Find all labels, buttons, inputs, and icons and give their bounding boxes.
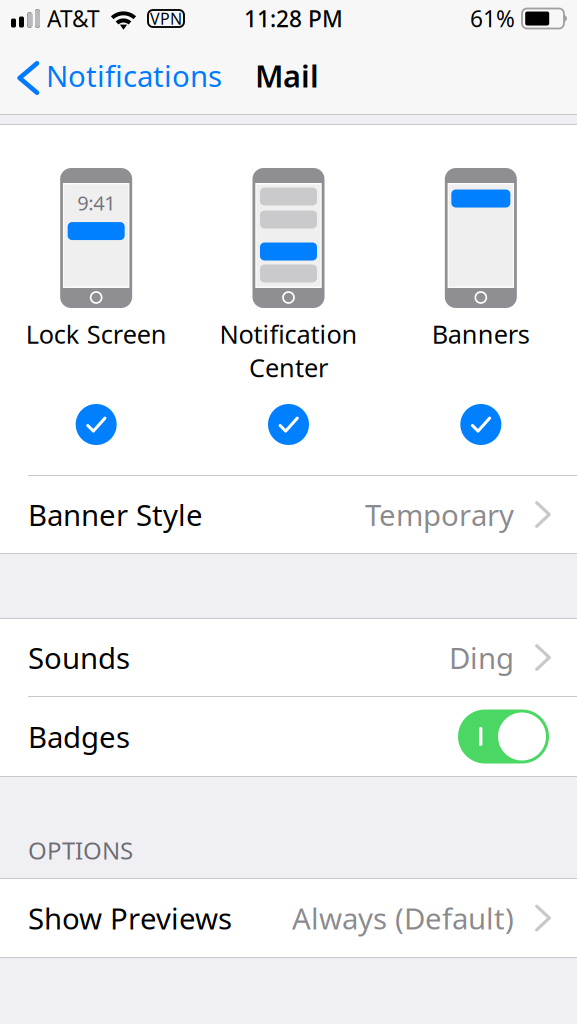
staticText: Temporary xyxy=(365,495,514,534)
button[interactable]: Notifications xyxy=(0,37,232,114)
staticText: AT&T xyxy=(47,3,100,33)
staticText: 11:28 PM xyxy=(244,3,343,33)
staticText: Ding xyxy=(449,638,514,677)
staticText: Always (Default) xyxy=(292,898,514,937)
button[interactable]: 9:41 xyxy=(0,125,192,475)
staticText: Lock Screen xyxy=(26,317,167,351)
button[interactable]: Show Previews xyxy=(0,879,577,957)
staticText: 61% xyxy=(470,3,515,33)
staticText: Banners xyxy=(432,317,530,351)
button[interactable]: Notification xyxy=(192,125,385,475)
button[interactable]: Banner Style xyxy=(0,476,577,553)
staticText: Sounds xyxy=(28,638,130,677)
button[interactable]: Banners xyxy=(385,125,577,475)
staticText: Notifications xyxy=(46,56,222,95)
staticText: 9:41 xyxy=(77,189,115,216)
staticText: Badges xyxy=(28,717,130,756)
staticText: OPTIONS xyxy=(28,834,133,866)
staticText: VPN xyxy=(150,8,182,29)
button[interactable]: Badges xyxy=(458,709,549,763)
staticText: Show Previews xyxy=(28,898,232,937)
staticText: Banner Style xyxy=(28,495,203,534)
staticText: Notification xyxy=(219,317,357,351)
button[interactable]: Sounds xyxy=(0,619,577,696)
staticText: Center xyxy=(249,351,328,384)
staticText: Mail xyxy=(255,55,319,96)
